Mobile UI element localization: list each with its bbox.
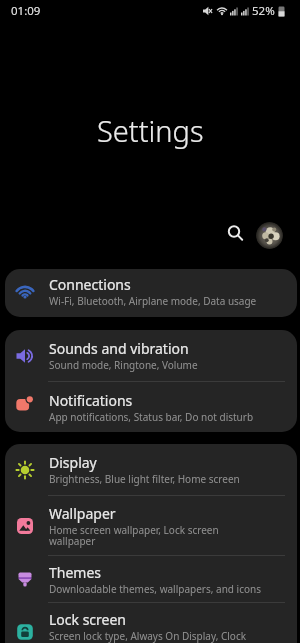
button[interactable]: [222, 221, 246, 245]
staticText: Screen lock type, Always On Display, Clo…: [49, 629, 247, 643]
staticText: Wallpaper: [49, 504, 116, 523]
staticText: Brightness, Blue light filter, Home scre…: [49, 472, 240, 486]
staticText: Themes: [49, 563, 102, 582]
staticText: Sounds and vibration: [49, 339, 189, 358]
button[interactable]: Notifications: [5, 382, 297, 432]
staticText: Display: [49, 453, 97, 472]
staticText: Notifications: [49, 391, 133, 410]
button[interactable]: Sounds and vibration: [5, 330, 297, 381]
button[interactable]: Display: [5, 444, 297, 495]
staticText: App notifications, Status bar, Do not di…: [49, 410, 254, 424]
staticText: 52%: [252, 3, 275, 19]
staticText: 01:09: [11, 3, 41, 19]
button[interactable]: Wallpaper: [5, 496, 297, 555]
button[interactable]: Connections: [5, 269, 297, 317]
button[interactable]: Themes: [5, 556, 297, 602]
button[interactable]: [256, 222, 283, 249]
staticText: Wi-Fi, Bluetooth, Airplane mode, Data us…: [49, 294, 257, 308]
staticText: Lock screen: [49, 610, 127, 629]
staticText: Connections: [49, 275, 131, 294]
staticText: Settings: [97, 111, 204, 150]
staticText: Sound mode, Ringtone, Volume: [49, 358, 198, 372]
button[interactable]: Lock screen: [5, 603, 297, 643]
staticText: Downloadable themes, wallpapers, and ico…: [49, 582, 261, 596]
staticText: Home screen wallpaper, Lock screen wallp…: [49, 523, 219, 548]
